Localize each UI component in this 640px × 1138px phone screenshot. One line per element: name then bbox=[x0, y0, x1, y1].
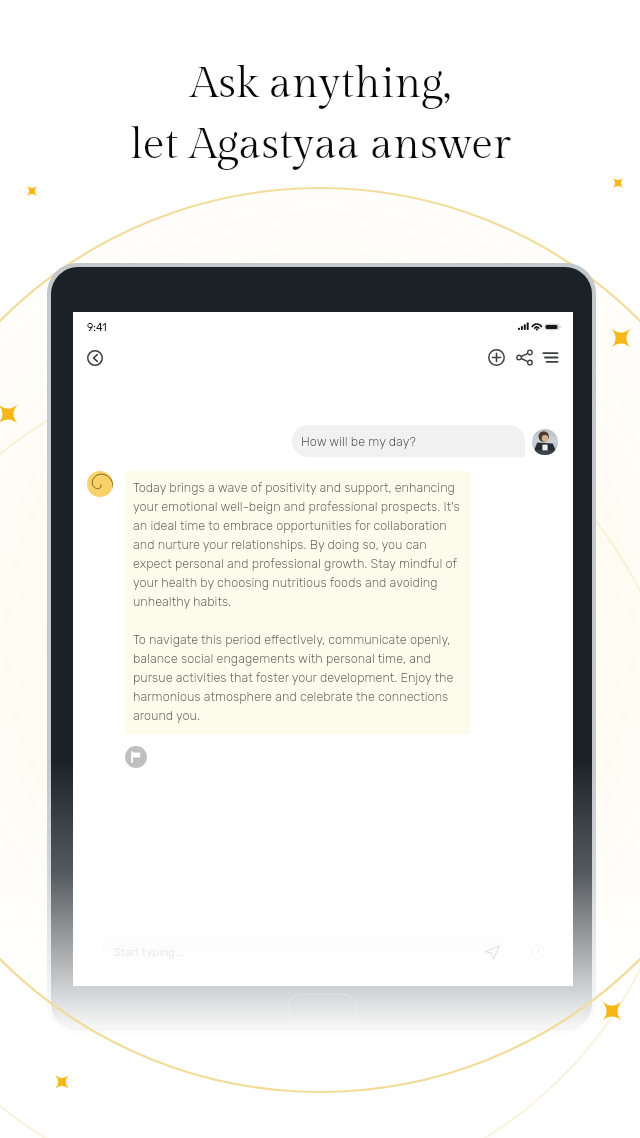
staticText: let Agastyaa answer bbox=[130, 120, 511, 171]
button[interactable]: New chat bbox=[483, 344, 509, 370]
staticText: 9:41 bbox=[87, 321, 107, 334]
staticText: Start typing... bbox=[114, 945, 184, 959]
staticText: Ask anything, bbox=[190, 59, 451, 110]
button[interactable]: Back bbox=[82, 345, 108, 371]
button[interactable]: Share bbox=[511, 344, 537, 370]
button[interactable]: Today brings a wave of positivity and su… bbox=[125, 471, 471, 734]
staticText: How will be my day? bbox=[301, 434, 416, 449]
button[interactable]: Menu bbox=[537, 344, 563, 370]
staticText: To navigate this period effectively, com… bbox=[133, 632, 463, 723]
button[interactable]: Info bbox=[531, 945, 545, 959]
button[interactable]: Report bbox=[125, 746, 147, 768]
staticText: Today brings a wave of positivity and su… bbox=[133, 480, 463, 609]
button[interactable]: How will be my day? bbox=[292, 425, 525, 457]
